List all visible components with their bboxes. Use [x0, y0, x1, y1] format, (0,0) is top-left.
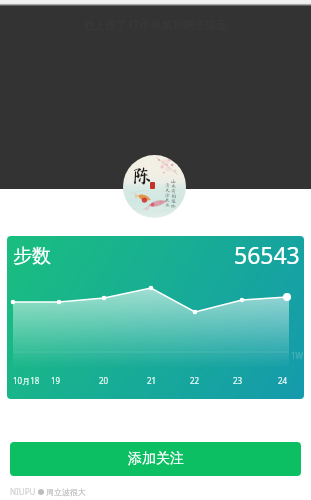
staticText: 陈: [132, 165, 152, 185]
staticText: 步数: [13, 244, 51, 268]
staticText: NIUPU: [10, 486, 36, 497]
staticText: 21: [147, 375, 157, 386]
button[interactable]: Profile avatar: [123, 155, 186, 218]
staticText: 风: [165, 188, 171, 193]
staticText: 56543: [234, 239, 300, 270]
staticText: 19: [51, 375, 61, 386]
staticText: 20: [99, 375, 109, 386]
staticText: 来: [165, 198, 171, 203]
staticText: 1W: [291, 350, 304, 361]
staticText: 徐: [165, 193, 171, 198]
staticText: 22: [190, 375, 200, 386]
staticText: 24: [278, 375, 288, 386]
staticText: 水: [165, 203, 171, 208]
staticText: 23: [233, 375, 243, 386]
button[interactable]: 步数: [7, 236, 304, 399]
staticText: 水: [171, 184, 177, 189]
staticText: 逢: [171, 199, 177, 204]
staticText: 相: [171, 194, 177, 199]
staticText: 添加关注: [128, 450, 184, 468]
staticText: 终: [171, 204, 177, 209]
staticText: 清: [165, 183, 171, 188]
button[interactable]: 添加关注: [10, 442, 301, 476]
staticText: 有: [171, 189, 177, 194]
staticText: 山: [171, 179, 177, 184]
staticText: 周立波很大: [46, 487, 86, 497]
staticText: 10月18: [13, 375, 40, 386]
